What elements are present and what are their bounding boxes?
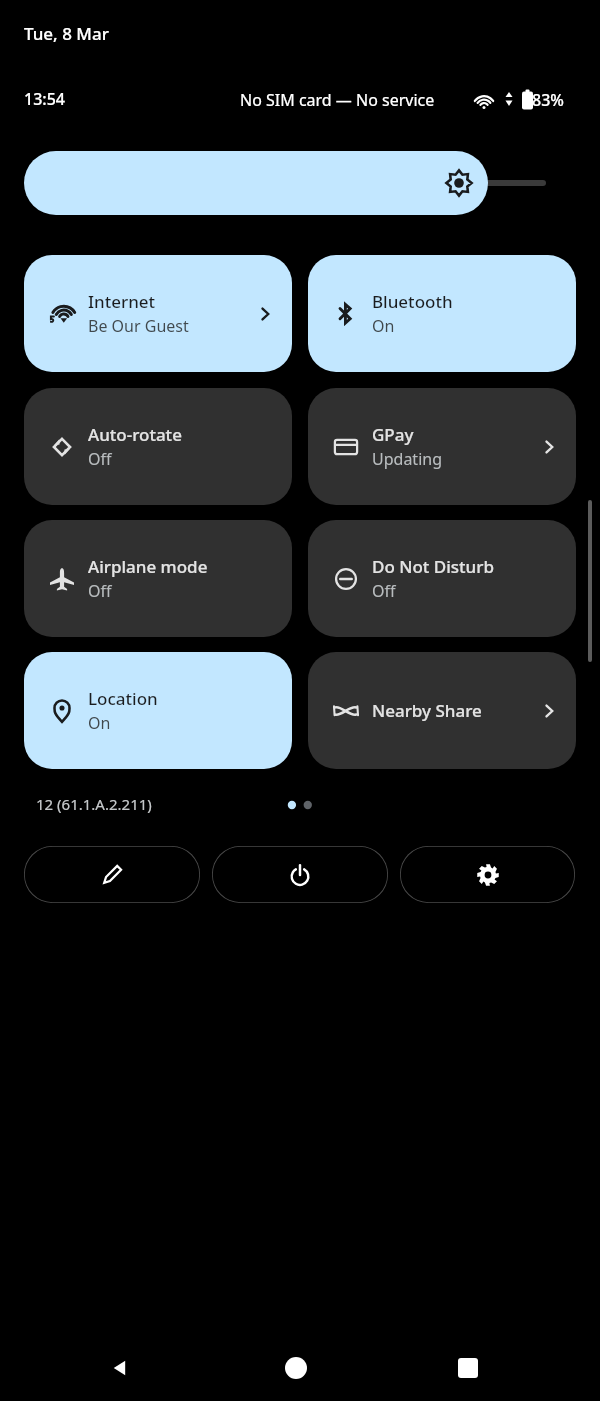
staticText: Airplane mode [88, 555, 208, 578]
staticText: Off [372, 580, 396, 602]
staticText: Off [88, 580, 112, 602]
button[interactable]: GPay [308, 388, 576, 505]
button[interactable]: Nearby Share [308, 652, 576, 769]
staticText: Off [88, 448, 112, 470]
staticText: 13:54 [24, 88, 65, 110]
staticText: GPay [372, 423, 414, 446]
staticText: Bluetooth [372, 290, 453, 313]
button[interactable]: Brightness [24, 151, 488, 215]
staticText: On [88, 712, 111, 734]
staticText: Nearby Share [372, 699, 482, 722]
button[interactable]: Back [86, 1335, 154, 1401]
button[interactable]: Home [262, 1335, 330, 1401]
button[interactable]: Airplane mode [24, 520, 292, 637]
staticText: On [372, 315, 395, 337]
button[interactable]: Bluetooth [308, 255, 576, 372]
button[interactable]: Settings [400, 846, 575, 903]
staticText: 12 (61.1.A.2.211) [36, 794, 152, 814]
button[interactable]: Auto-rotate [24, 388, 292, 505]
staticText: Be Our Guest [88, 315, 189, 337]
staticText: Auto-rotate [88, 423, 182, 446]
button[interactable]: Do Not Disturb [308, 520, 576, 637]
staticText: Do Not Disturb [372, 555, 494, 578]
button[interactable]: Internet [24, 255, 292, 372]
staticText: Tue, 8 Mar [24, 22, 109, 45]
button[interactable]: Power [212, 846, 388, 903]
staticText: Updating [372, 448, 442, 470]
staticText: 83% [532, 89, 564, 111]
button[interactable]: Recents [434, 1335, 502, 1401]
button[interactable]: Location [24, 652, 292, 769]
button[interactable]: Edit [24, 846, 200, 903]
staticText: No SIM card — No service [240, 89, 435, 111]
staticText: Internet [88, 290, 156, 313]
staticText: Location [88, 687, 158, 710]
